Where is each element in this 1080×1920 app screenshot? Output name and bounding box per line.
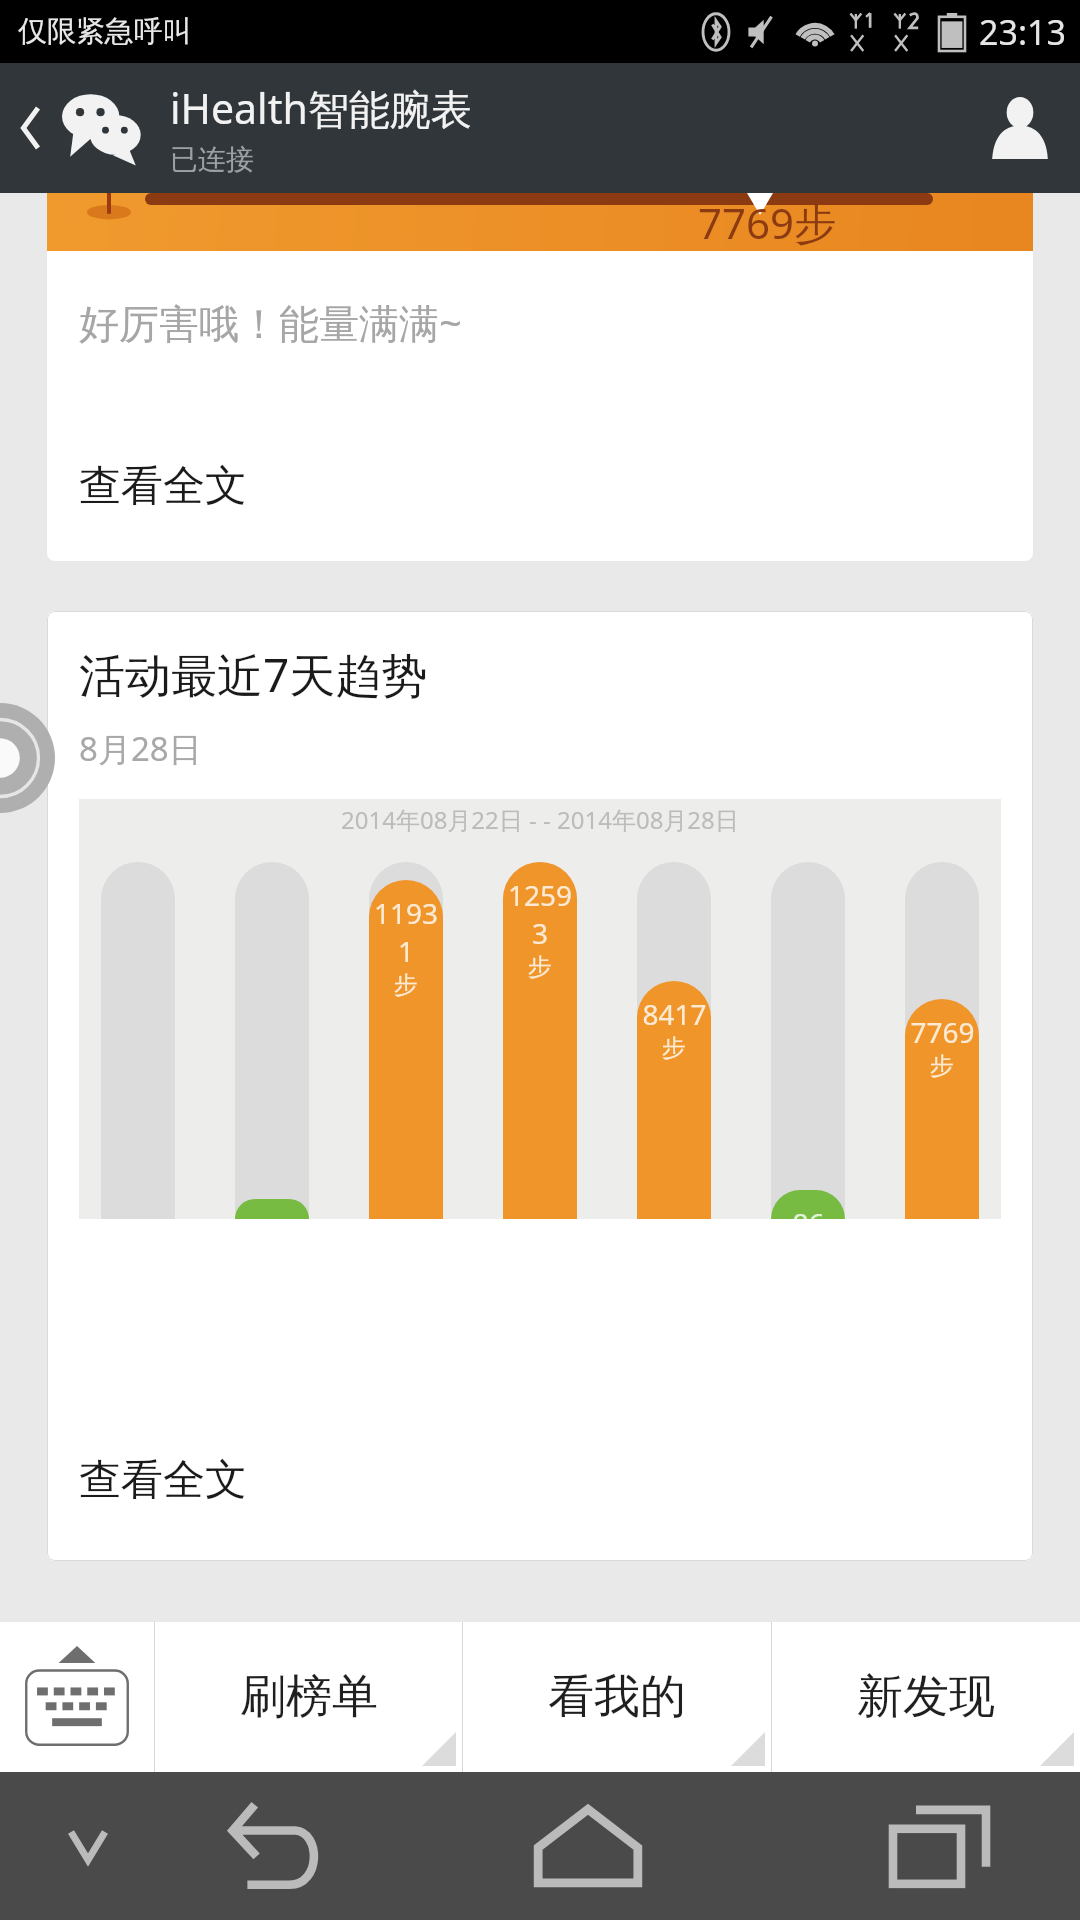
button[interactable]: Back: [175, 1772, 375, 1920]
button[interactable]: 刷榜单: [155, 1622, 462, 1772]
button[interactable]: 查看全文: [79, 1454, 247, 1507]
staticText: 新发现: [857, 1668, 995, 1726]
staticText: iHealth智能腕表: [170, 80, 472, 136]
button[interactable]: Keyboard: [0, 1622, 154, 1772]
staticText: 11931: [369, 894, 443, 970]
button[interactable]: 新发现: [772, 1622, 1080, 1772]
staticText: 步: [662, 1033, 686, 1063]
staticText: 12593: [503, 876, 577, 952]
staticText: 2014年08月22日 - - 2014年08月28日: [341, 803, 739, 836]
button[interactable]: Back: [0, 63, 62, 193]
staticText: 活动最近7天趋势: [79, 643, 428, 706]
button[interactable]: 活动最近7天趋势: [47, 611, 1033, 1561]
staticText: 8417: [642, 995, 707, 1033]
staticText: 23:13: [979, 9, 1066, 55]
staticText: 步: [930, 1051, 954, 1081]
button[interactable]: Hide keyboard: [0, 1772, 175, 1920]
button[interactable]: 7769步: [47, 193, 1033, 561]
staticText: 步: [528, 952, 552, 982]
button[interactable]: 看我的: [463, 1622, 771, 1772]
staticText: 86: [792, 1204, 825, 1219]
staticText: 8月28日: [79, 726, 202, 771]
staticText: 刷榜单: [240, 1668, 378, 1726]
staticText: 已连接: [170, 142, 254, 177]
button[interactable]: 查看全文: [79, 460, 247, 513]
staticText: 仅限紧急呼叫: [18, 13, 192, 50]
staticText: 好厉害哦！能量满满~: [79, 295, 462, 350]
staticText: 7769: [910, 1013, 975, 1051]
staticText: 看我的: [548, 1668, 686, 1726]
button[interactable]: Home: [375, 1772, 800, 1920]
button[interactable]: Contact profile: [960, 63, 1080, 193]
staticText: 7769步: [698, 194, 837, 251]
button[interactable]: Recent apps: [800, 1772, 1080, 1920]
staticText: 步: [394, 970, 418, 1000]
